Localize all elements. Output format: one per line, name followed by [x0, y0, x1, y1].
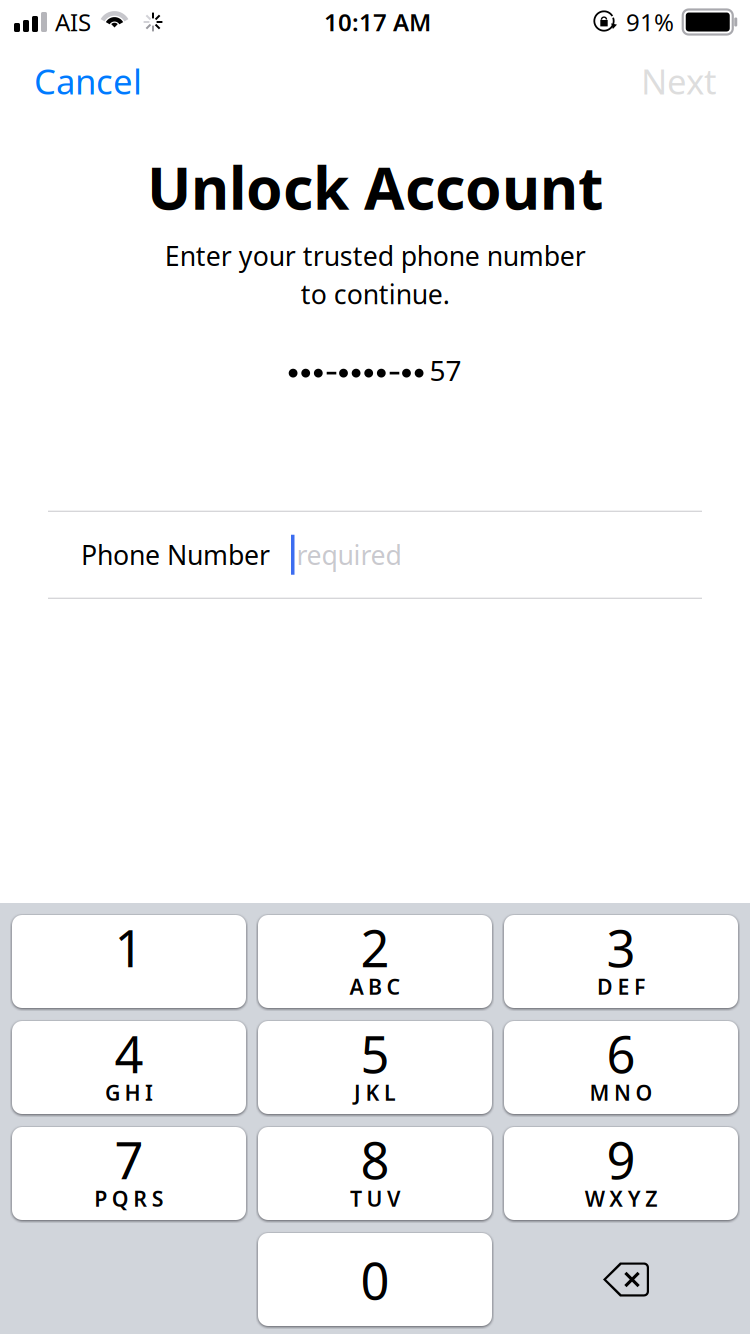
staticText: required: [296, 537, 401, 572]
staticText: Next: [641, 58, 717, 104]
staticText: GHI: [105, 1078, 153, 1107]
staticText: 9: [606, 1126, 635, 1193]
staticText: MNO: [589, 1078, 652, 1107]
button[interactable]: 4: [12, 1021, 246, 1114]
staticText: Unlock Account: [147, 148, 603, 226]
button[interactable]: 8: [258, 1127, 492, 1220]
button[interactable]: 0: [258, 1233, 492, 1326]
staticText: DEF: [597, 972, 645, 1001]
button[interactable]: 3: [504, 915, 738, 1008]
staticText: 10:17 AM: [324, 6, 431, 38]
staticText: Enter your trusted phone number to conti…: [164, 238, 585, 312]
button[interactable]: Cancel: [18, 48, 158, 114]
button[interactable]: 5: [258, 1021, 492, 1114]
button[interactable]: Next: [625, 48, 733, 114]
staticText: PQRS: [94, 1184, 164, 1213]
staticText: 8: [360, 1126, 389, 1193]
staticText: 3: [606, 914, 635, 981]
staticText: 2: [360, 914, 389, 981]
staticText: 4: [114, 1020, 143, 1087]
staticText: Cancel: [34, 58, 142, 104]
staticText: 91%: [626, 6, 674, 38]
button[interactable]: 1: [12, 915, 246, 1008]
staticText: 0: [360, 1246, 389, 1314]
button[interactable]: 7: [12, 1127, 246, 1220]
staticText: ABC: [349, 972, 400, 1001]
button[interactable]: 9: [504, 1127, 738, 1220]
staticText: TUV: [350, 1184, 400, 1213]
staticText: 5: [360, 1020, 389, 1087]
staticText: Phone Number: [81, 537, 270, 572]
staticText: 6: [606, 1020, 635, 1087]
button[interactable]: 2: [258, 915, 492, 1008]
button[interactable]: 6: [504, 1021, 738, 1114]
staticText: 1: [114, 914, 143, 981]
staticText: AIS: [55, 6, 91, 38]
staticText: 7: [114, 1126, 143, 1193]
staticText: JKL: [354, 1078, 396, 1107]
staticText: 57: [429, 352, 461, 389]
staticText: WXYZ: [585, 1184, 657, 1213]
button[interactable]: Delete: [504, 1233, 738, 1326]
